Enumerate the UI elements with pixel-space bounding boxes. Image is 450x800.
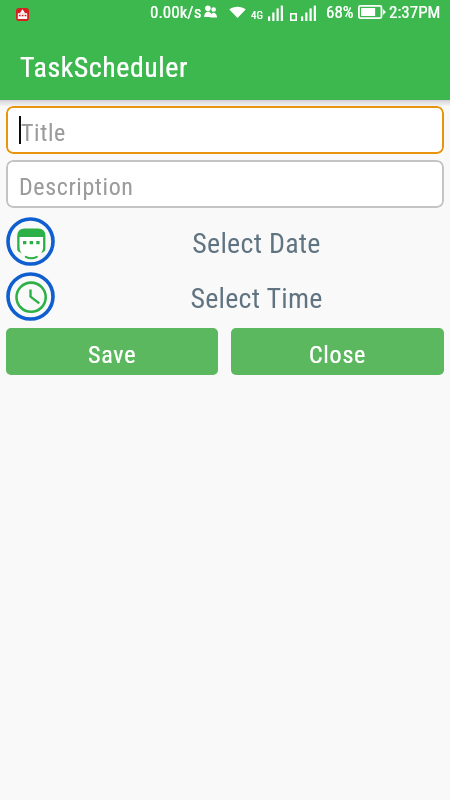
staticText: 0.00k/s	[150, 2, 202, 22]
staticText: Description	[19, 173, 134, 201]
staticText: TaskScheduler	[20, 51, 188, 84]
button[interactable]: Close	[231, 328, 444, 375]
staticText: 68%	[326, 2, 354, 22]
button[interactable]: Title	[6, 106, 444, 154]
staticText: Title	[21, 119, 66, 147]
staticText: Save	[88, 341, 137, 369]
staticText: Close	[309, 341, 367, 369]
button[interactable]: Save	[6, 328, 218, 375]
staticText: Select Date	[192, 227, 321, 260]
button[interactable]: Description	[6, 160, 444, 208]
staticText: 2:37PM	[389, 2, 441, 22]
button[interactable]: Select Date	[6, 217, 55, 266]
button[interactable]: Select Time	[6, 272, 55, 321]
staticText: Select Time	[190, 282, 323, 315]
staticText: 4G	[251, 9, 263, 22]
